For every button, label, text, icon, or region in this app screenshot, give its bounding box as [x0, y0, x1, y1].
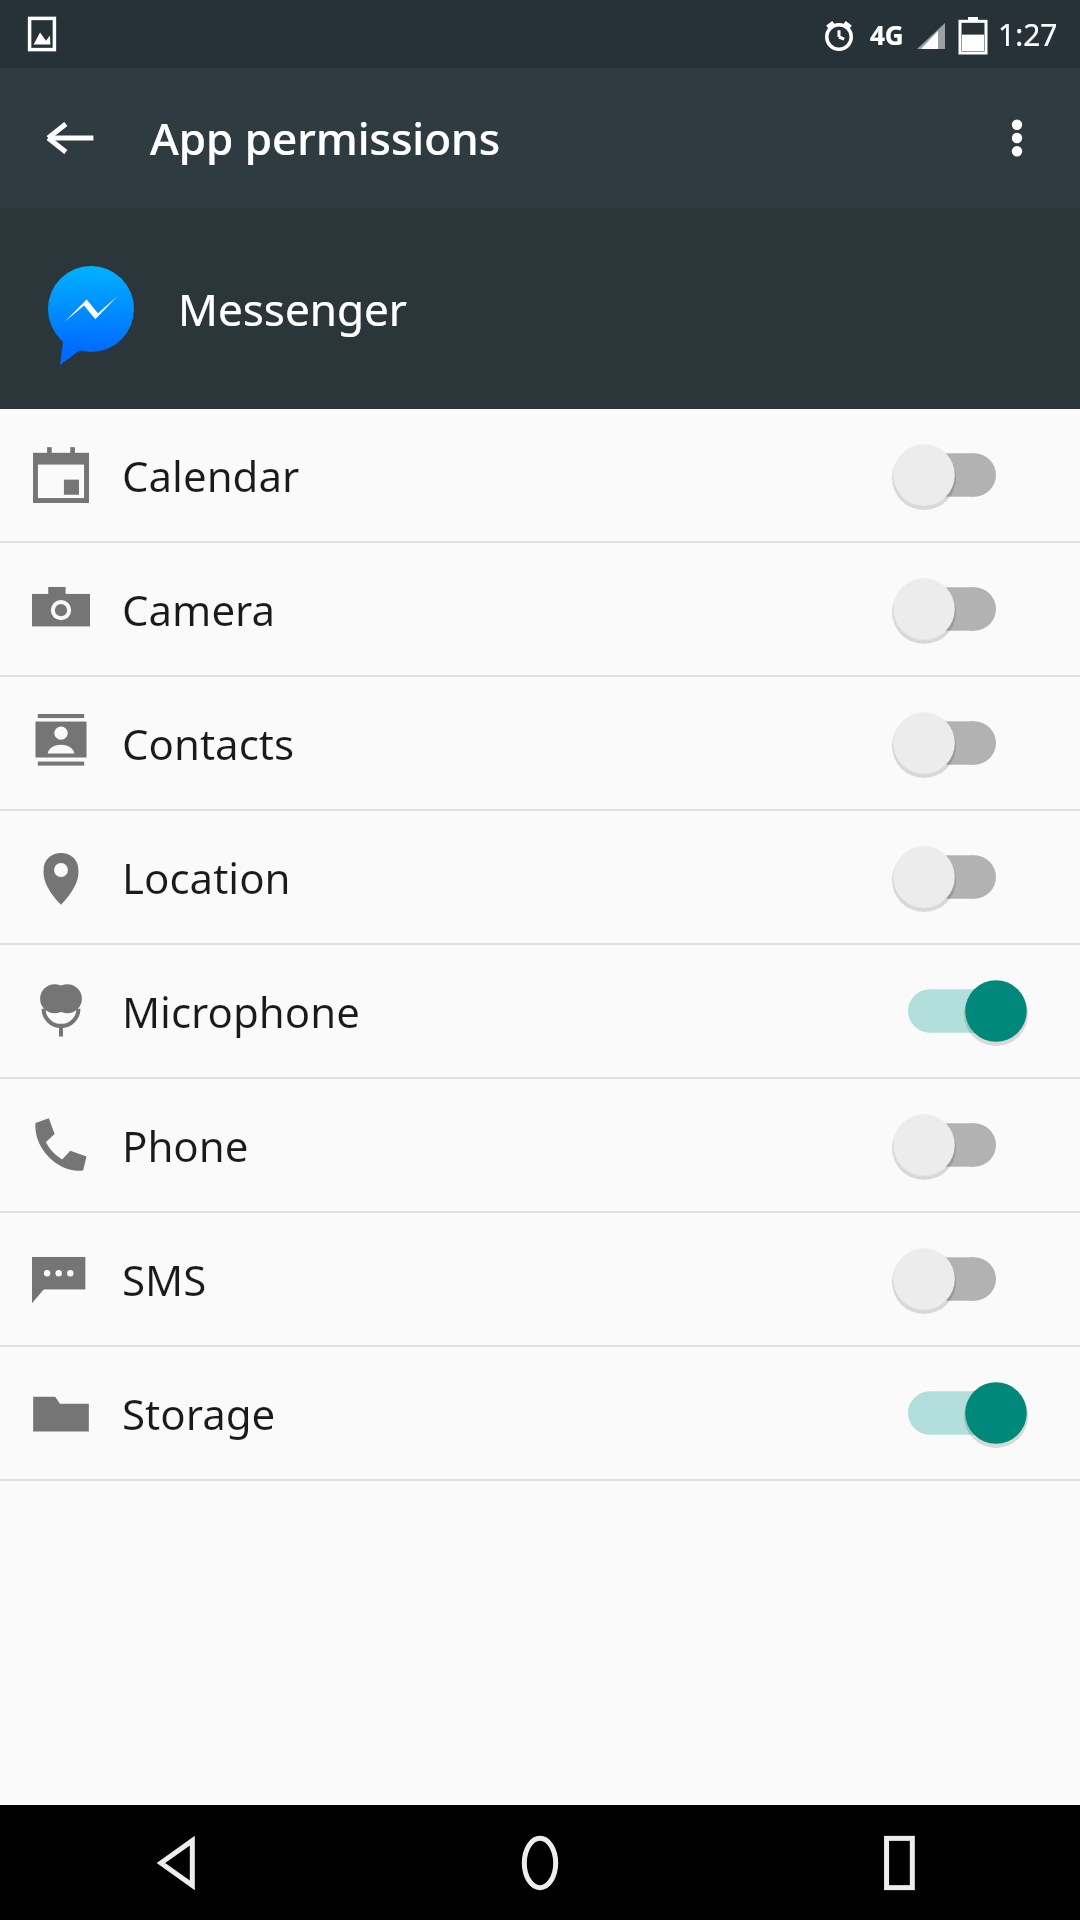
- staticText: SMS: [122, 1251, 908, 1308]
- staticText: Phone: [122, 1117, 908, 1174]
- button[interactable]: More options: [974, 95, 1060, 181]
- button[interactable]: Recent apps: [720, 1805, 1080, 1920]
- button[interactable]: Location: [0, 811, 1080, 943]
- staticText: Microphone: [122, 983, 908, 1040]
- button[interactable]: Calendar: [0, 409, 1080, 541]
- staticText: App permissions: [150, 108, 501, 168]
- staticText: Storage: [122, 1385, 908, 1442]
- staticText: 1:27: [998, 14, 1058, 55]
- button[interactable]: Back: [0, 1805, 360, 1920]
- button[interactable]: Messenger: [0, 208, 1080, 409]
- button[interactable]: Contacts: [0, 677, 1080, 809]
- staticText: Messenger: [178, 279, 407, 339]
- button[interactable]: Home: [360, 1805, 720, 1920]
- button[interactable]: SMS: [0, 1213, 1080, 1345]
- staticText: Contacts: [122, 715, 908, 772]
- staticText: Camera: [122, 581, 908, 638]
- staticText: Calendar: [122, 447, 908, 504]
- staticText: Location: [122, 849, 908, 906]
- button[interactable]: Camera: [0, 543, 1080, 675]
- button[interactable]: Back: [30, 98, 110, 178]
- button[interactable]: Microphone: [0, 945, 1080, 1077]
- button[interactable]: Storage: [0, 1347, 1080, 1479]
- button[interactable]: Phone: [0, 1079, 1080, 1211]
- staticText: 4G: [870, 17, 904, 52]
